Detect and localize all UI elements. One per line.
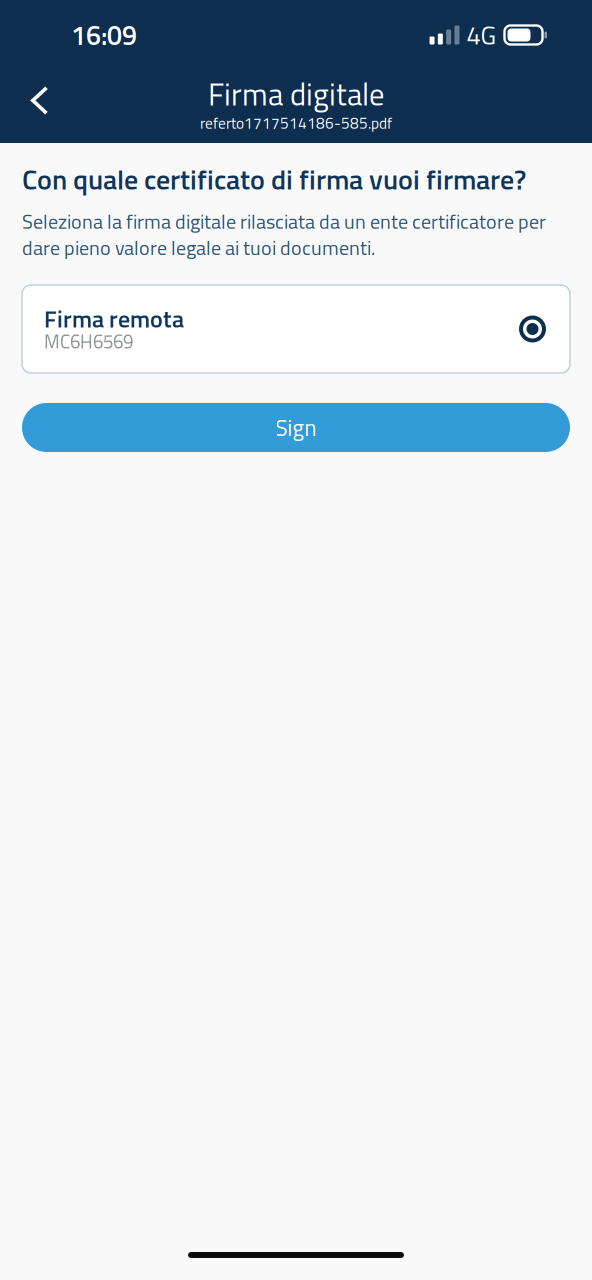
- staticText: Firma digitale: [208, 71, 384, 117]
- button[interactable]: Back: [0, 73, 70, 130]
- button[interactable]: Sign: [22, 403, 570, 452]
- staticText: Con quale certificato di firma vuoi firm…: [22, 158, 526, 200]
- staticText: MC6H6569: [44, 327, 133, 356]
- staticText: Sign: [275, 410, 316, 445]
- staticText: referto1717514186-585.pdf: [200, 111, 392, 135]
- staticText: Seleziona la firma digitale rilasciata d…: [22, 206, 546, 263]
- staticText: Firma remota: [44, 300, 184, 337]
- staticText: 4G: [466, 16, 496, 54]
- staticText: 16:09: [71, 15, 137, 55]
- button[interactable]: Firma remota: [22, 285, 570, 373]
